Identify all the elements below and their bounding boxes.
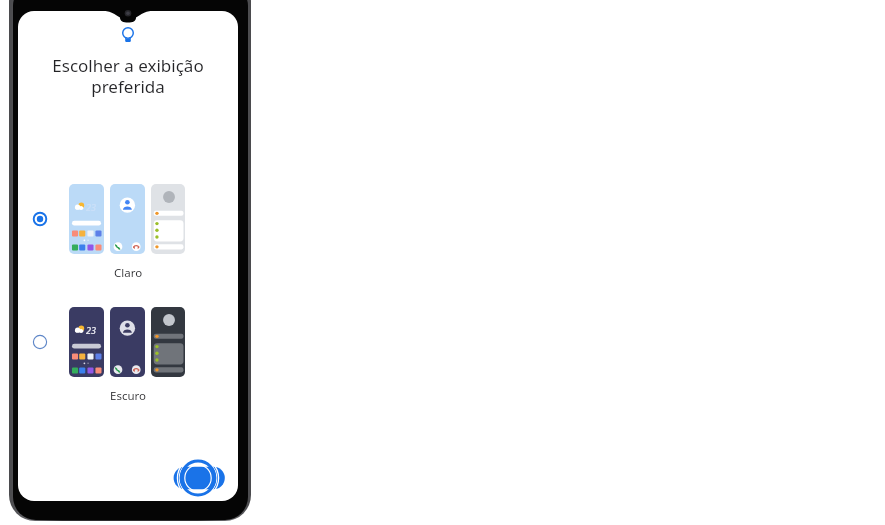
staticText: 23 (86, 324, 96, 336)
button[interactable]: Próximo (168, 452, 228, 501)
staticText: 23 (86, 201, 96, 213)
staticText: Claro (114, 265, 143, 281)
button[interactable]: Claro (28, 207, 52, 231)
button[interactable]: Escuro (28, 330, 52, 354)
staticText: Escolher a exibição preferida (38, 54, 218, 98)
staticText: Escuro (110, 388, 147, 404)
